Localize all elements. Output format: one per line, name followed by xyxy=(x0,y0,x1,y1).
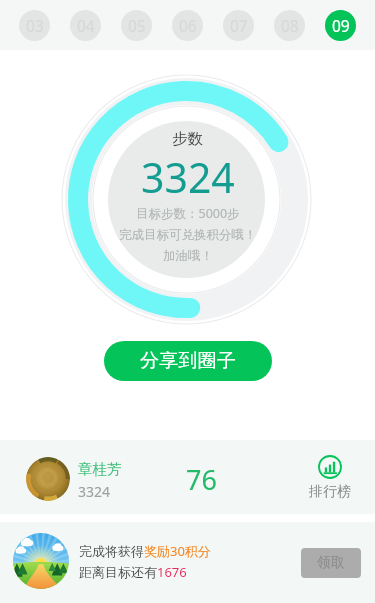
staticText: 07 xyxy=(230,15,248,36)
staticText: 06 xyxy=(179,15,197,36)
staticText: 目标步数：5000步 xyxy=(136,205,240,222)
button[interactable]: 分享到圈子 xyxy=(104,341,272,381)
button[interactable]: 07 xyxy=(223,10,254,41)
staticText: 完成将获得奖励30积分 xyxy=(79,542,211,560)
staticText: 03 xyxy=(26,15,44,36)
button[interactable]: 09 xyxy=(325,10,356,41)
staticText: 步数 xyxy=(172,129,203,149)
button[interactable]: 领取 xyxy=(301,548,361,578)
staticText: 76 xyxy=(186,461,217,498)
button[interactable]: 06 xyxy=(172,10,203,41)
button[interactable]: 04 xyxy=(70,10,101,41)
staticText: 分享到圈子 xyxy=(140,349,236,373)
button[interactable]: 03 xyxy=(19,10,50,41)
staticText: 05 xyxy=(128,15,146,36)
staticText: 距离目标还有1676 xyxy=(79,563,187,581)
button[interactable]: 08 xyxy=(274,10,305,41)
staticText: 章桂芳 xyxy=(78,460,122,478)
staticText: 加油哦！ xyxy=(163,248,213,264)
staticText: 完成目标可兑换积分哦！ xyxy=(119,227,257,243)
staticText: 3324 xyxy=(141,149,235,205)
staticText: 领取 xyxy=(317,554,345,572)
button[interactable]: 章桂芳 xyxy=(0,440,375,514)
staticText: 04 xyxy=(77,15,95,36)
staticText: 08 xyxy=(281,15,299,36)
staticText: 09 xyxy=(332,15,350,36)
button[interactable]: 05 xyxy=(121,10,152,41)
staticText: 排行榜 xyxy=(309,483,351,501)
other: 排行榜 xyxy=(318,455,342,479)
staticText: 3324 xyxy=(78,482,111,501)
